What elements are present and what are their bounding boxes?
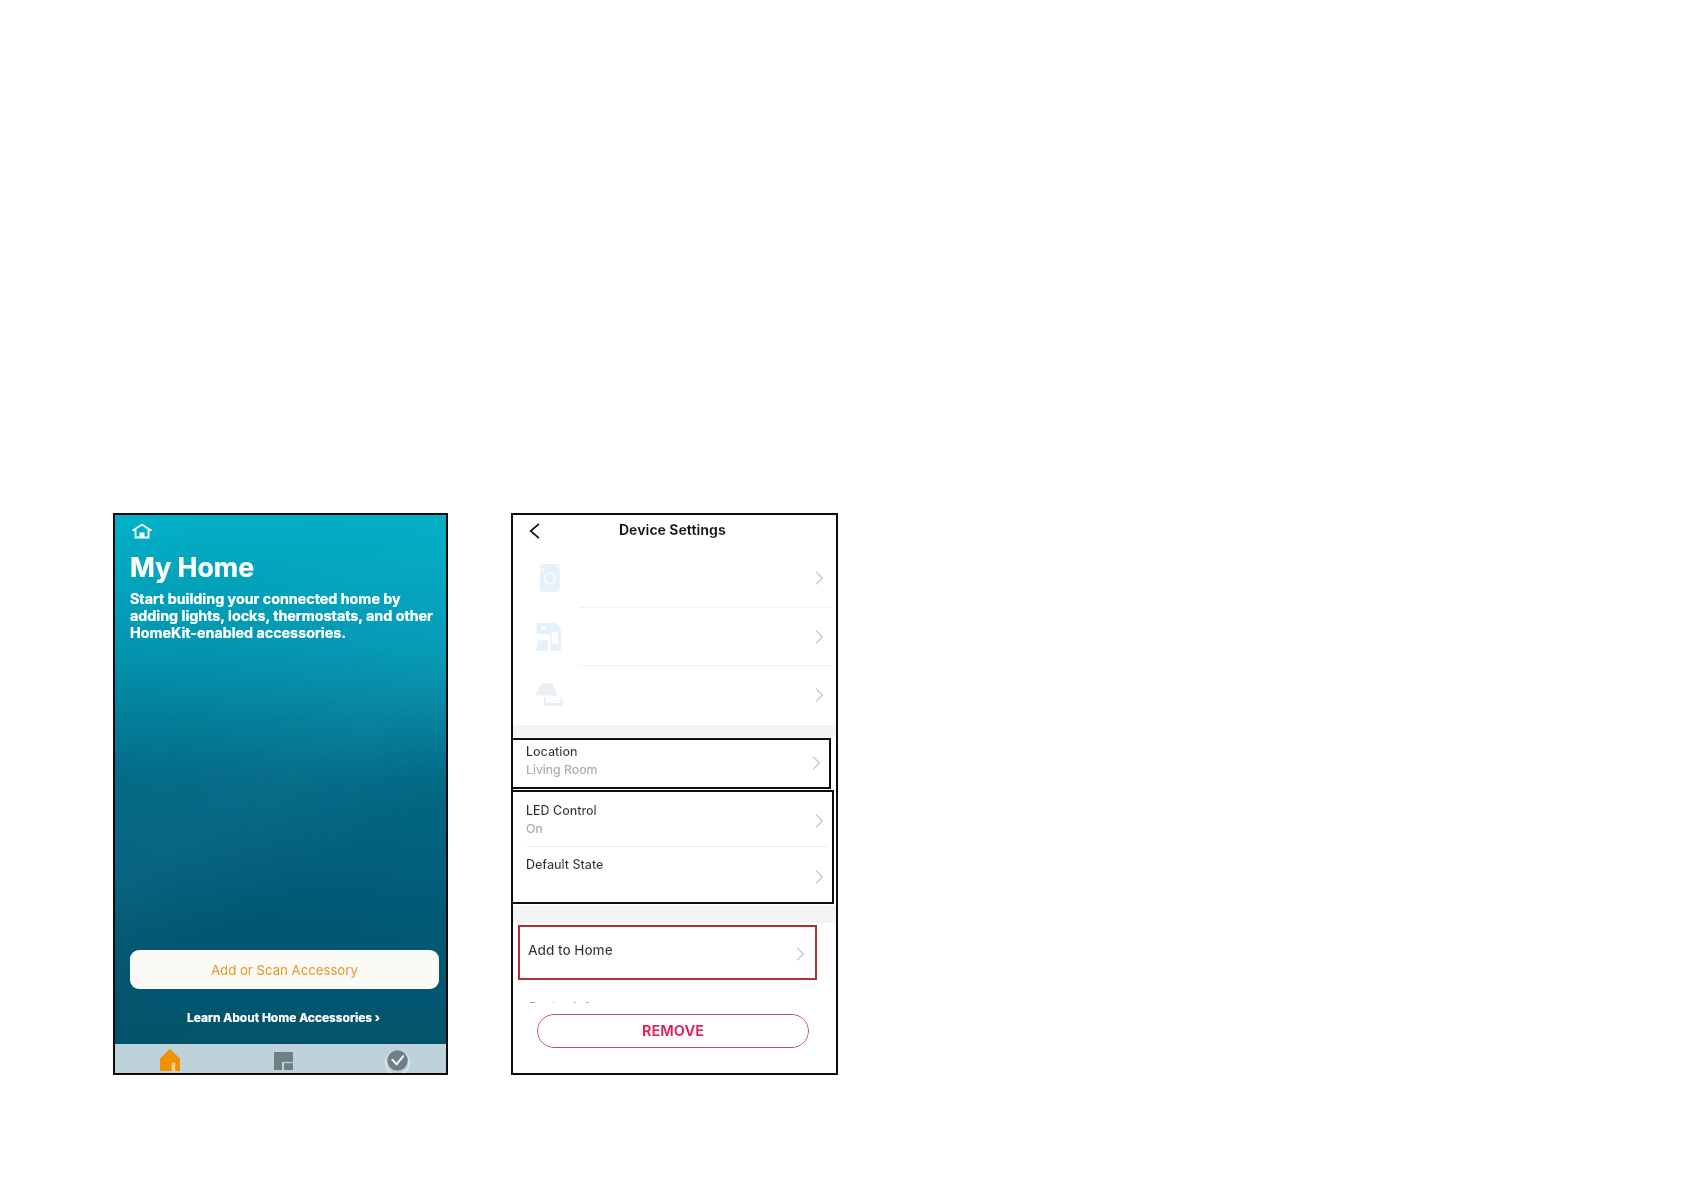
staticText: Default State (526, 857, 604, 872)
button[interactable]: Location (511, 738, 831, 789)
staticText: On (526, 821, 543, 836)
button[interactable]: REMOVE (537, 1014, 809, 1048)
button[interactable] (513, 666, 836, 724)
button[interactable]: Rooms tab (260, 1048, 307, 1074)
button[interactable]: Add or Scan Accessory (130, 950, 439, 989)
staticText: My Home (130, 551, 255, 583)
staticText: Add or Scan Accessory (211, 962, 358, 978)
button[interactable] (513, 549, 836, 607)
button[interactable]: Home tab (146, 1045, 194, 1075)
staticText: Location (526, 744, 578, 759)
button[interactable]: Automation tab (372, 1046, 423, 1076)
staticText: Device Info (529, 1001, 597, 1003)
staticText: Learn About Home Accessories › (187, 1010, 381, 1025)
button[interactable]: Learn About Home Accessories › (186, 1007, 381, 1027)
button[interactable]: Home (131, 522, 153, 540)
button[interactable]: Back (524, 520, 546, 542)
button[interactable]: Add to Home (518, 925, 817, 980)
staticText: Device Settings (619, 521, 726, 538)
button[interactable]: Default State (511, 847, 834, 897)
button[interactable]: LED Control (511, 790, 834, 847)
staticText: LED Control (526, 803, 597, 818)
button[interactable] (513, 608, 836, 666)
staticText: Add to Home (528, 942, 613, 958)
staticText: REMOVE (642, 1022, 705, 1040)
staticText: Start building your connected home by ad… (130, 590, 437, 641)
staticText: Living Room (526, 762, 598, 777)
